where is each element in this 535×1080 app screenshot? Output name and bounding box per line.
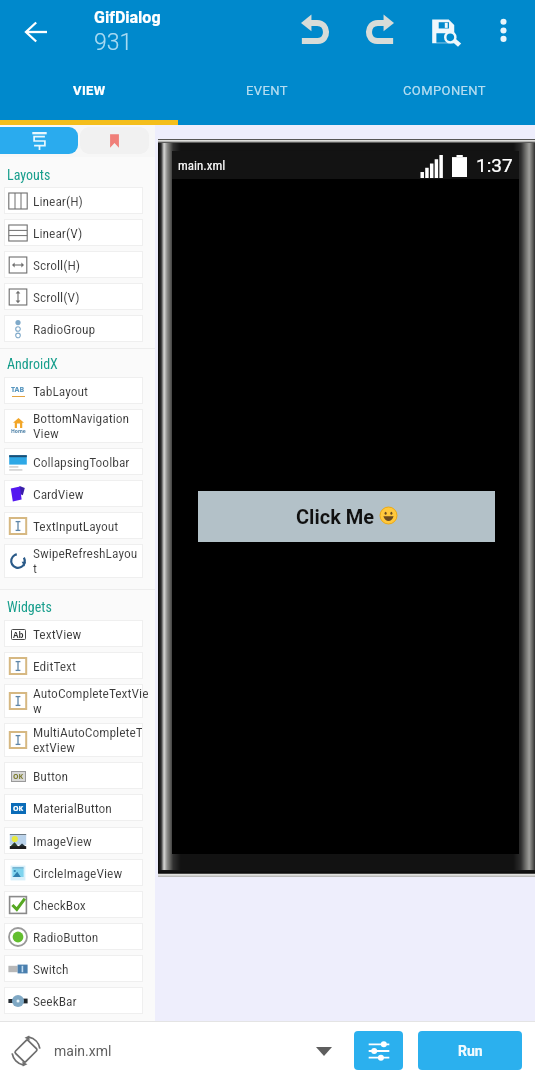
staticText: 1:37 bbox=[476, 154, 513, 176]
button[interactable]: VIEW bbox=[0, 60, 178, 120]
button[interactable]: Scroll(H) bbox=[4, 251, 143, 278]
staticText: main.xml bbox=[178, 158, 226, 173]
staticText: RadioButton bbox=[33, 929, 99, 945]
button[interactable]: MultiAutoCompleteT extView bbox=[4, 723, 143, 757]
button[interactable]: CircleImageView bbox=[4, 859, 143, 886]
button[interactable]: Click Me bbox=[198, 491, 495, 542]
staticText: Widgets bbox=[7, 599, 52, 615]
button[interactable]: Scroll(V) bbox=[4, 283, 143, 310]
staticText: COMPONENT bbox=[403, 83, 487, 98]
button[interactable]: SeekBar bbox=[4, 987, 143, 1014]
staticText: Run bbox=[458, 1043, 483, 1059]
button[interactable]: OK bbox=[4, 762, 143, 789]
staticText: Click Me bbox=[296, 505, 380, 528]
button[interactable]: TextInputLayout bbox=[4, 512, 143, 539]
button[interactable]: CollapsingToolbar bbox=[4, 448, 143, 475]
button[interactable]: Home bbox=[4, 409, 143, 443]
staticText: MaterialButton bbox=[33, 800, 112, 816]
staticText: TAB bbox=[11, 385, 25, 395]
staticText: OK bbox=[13, 804, 24, 814]
staticText: TabLayout bbox=[33, 383, 89, 399]
button[interactable]: EVENT bbox=[178, 60, 356, 120]
staticText: SeekBar bbox=[33, 993, 77, 1009]
staticText: Scroll(H) bbox=[33, 257, 81, 273]
button[interactable]: Undo bbox=[289, 2, 341, 58]
staticText: Home bbox=[11, 428, 26, 435]
staticText: BottomNavigation View bbox=[33, 410, 130, 442]
button[interactable]: Switch bbox=[4, 955, 143, 982]
button[interactable]: Favourites palette bbox=[80, 127, 149, 154]
staticText: 931 bbox=[94, 29, 133, 56]
button[interactable]: CheckBox bbox=[4, 891, 143, 918]
staticText: Switch bbox=[33, 961, 69, 977]
button[interactable]: Linear(H) bbox=[4, 187, 143, 214]
button[interactable]: Linear(V) bbox=[4, 219, 143, 246]
button[interactable]: COMPONENT bbox=[356, 60, 534, 120]
staticText: Linear(V) bbox=[33, 225, 83, 241]
button[interactable]: CardView bbox=[4, 480, 143, 507]
staticText: EVENT bbox=[246, 83, 288, 98]
button[interactable]: Run bbox=[418, 1031, 522, 1070]
button[interactable]: TAB bbox=[4, 377, 143, 404]
staticText: OK bbox=[13, 772, 24, 782]
staticText: CircleImageView bbox=[33, 865, 123, 881]
staticText: Button bbox=[33, 768, 69, 784]
button[interactable]: Navigate up bbox=[8, 4, 64, 60]
button[interactable]: RadioButton bbox=[4, 923, 143, 950]
staticText: AndroidX bbox=[7, 356, 58, 372]
button[interactable]: ImageView bbox=[4, 827, 143, 854]
button[interactable]: Views palette bbox=[0, 127, 78, 154]
staticText: SwipeRefreshLayou t bbox=[33, 545, 138, 577]
staticText: Ab bbox=[13, 629, 24, 640]
staticText: MultiAutoCompleteT extView bbox=[33, 724, 143, 756]
staticText: VIEW bbox=[73, 83, 106, 98]
button[interactable]: Save as bbox=[417, 2, 469, 58]
button[interactable]: AutoCompleteTextVie w bbox=[4, 684, 143, 718]
button[interactable]: main.xml bbox=[46, 1021, 306, 1080]
button[interactable]: Choose layout file bbox=[306, 1033, 341, 1068]
staticText: CollapsingToolbar bbox=[33, 454, 130, 470]
staticText: ImageView bbox=[33, 833, 92, 849]
staticText: Scroll(V) bbox=[33, 289, 80, 305]
staticText: AutoCompleteTextVie w bbox=[33, 685, 143, 717]
staticText: Linear(H) bbox=[33, 193, 83, 209]
staticText: RadioGroup bbox=[33, 321, 96, 337]
staticText: EditText bbox=[33, 658, 76, 674]
staticText: GifDialog bbox=[94, 8, 161, 27]
staticText: CheckBox bbox=[33, 897, 86, 913]
staticText: main.xml bbox=[54, 1043, 112, 1059]
button[interactable]: Redo bbox=[353, 2, 405, 58]
button[interactable]: More options bbox=[477, 2, 529, 58]
staticText: TextView bbox=[33, 626, 82, 642]
staticText: Layouts bbox=[7, 167, 51, 183]
staticText: TextInputLayout bbox=[33, 518, 119, 534]
button[interactable]: SwipeRefreshLayou t bbox=[4, 544, 143, 578]
button[interactable]: EditText bbox=[4, 652, 143, 679]
button[interactable]: Preview settings bbox=[354, 1031, 403, 1070]
button[interactable]: OK bbox=[4, 794, 143, 821]
staticText: CardView bbox=[33, 486, 84, 502]
button[interactable]: Ab bbox=[4, 620, 143, 647]
button[interactable]: Rotate preview bbox=[6, 1031, 46, 1071]
button[interactable]: RadioGroup bbox=[4, 315, 143, 342]
